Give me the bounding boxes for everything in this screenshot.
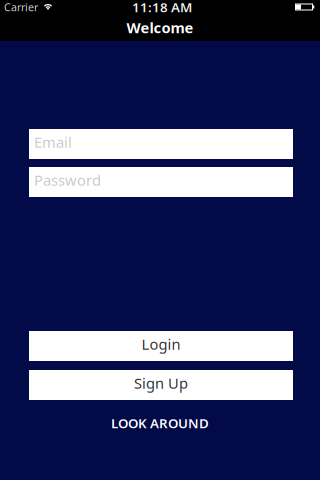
button[interactable]: LOOK AROUND	[111, 415, 209, 431]
staticText: Password	[34, 170, 101, 190]
staticText: Login	[141, 334, 180, 354]
staticText: Email	[34, 132, 72, 152]
staticText: Carrier	[4, 0, 38, 14]
button[interactable]: Password	[27, 167, 293, 197]
staticText: Sign Up	[134, 373, 188, 393]
staticText: Welcome	[126, 18, 193, 37]
button[interactable]: Login	[27, 331, 293, 361]
button[interactable]: Email	[27, 129, 293, 159]
staticText: LOOK AROUND	[111, 414, 209, 432]
staticText: 11:18 AM	[132, 0, 192, 16]
button[interactable]: Sign Up	[27, 370, 293, 400]
